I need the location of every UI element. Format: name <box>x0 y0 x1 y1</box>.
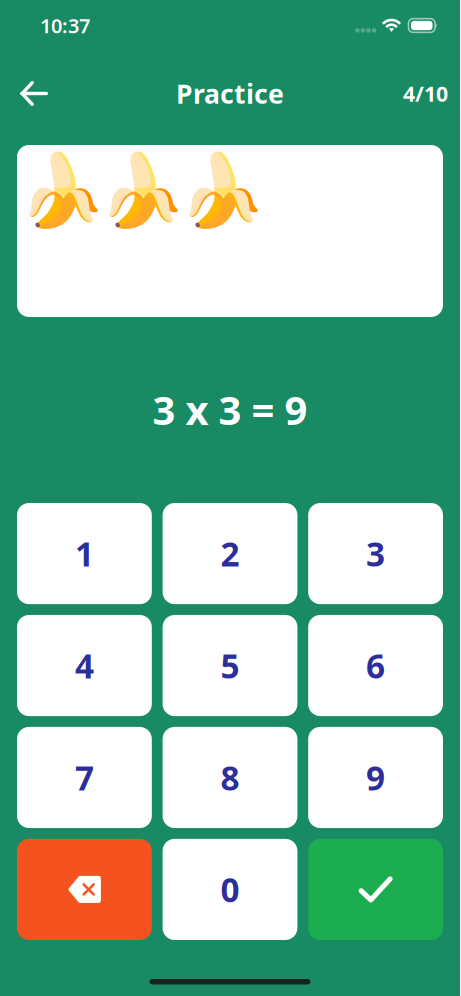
staticText: 9 <box>366 755 385 800</box>
button[interactable]: 1 <box>17 503 152 604</box>
staticText: 🍌 <box>18 151 106 231</box>
button[interactable]: 6 <box>308 615 443 716</box>
staticText: 1 <box>75 531 94 576</box>
button[interactable]: 4 <box>17 615 152 716</box>
button[interactable]: 5 <box>163 615 297 716</box>
staticText: 3 x 3 = 9 <box>152 383 307 436</box>
staticText: Practice <box>176 76 284 111</box>
staticText: 6 <box>366 643 385 688</box>
staticText: 4 <box>75 643 94 688</box>
staticText: 🍌 <box>98 151 186 231</box>
button[interactable]: 3 <box>308 503 443 604</box>
staticText: 4/10 <box>403 79 448 108</box>
button[interactable]: Submit answer <box>308 839 443 940</box>
button[interactable]: 8 <box>163 727 297 828</box>
button[interactable]: 9 <box>308 727 443 828</box>
staticText: 3 <box>366 531 385 576</box>
staticText: 2 <box>220 531 239 576</box>
button[interactable]: 7 <box>17 727 152 828</box>
button[interactable]: 0 <box>163 839 297 940</box>
staticText: 10:37 <box>40 12 90 39</box>
staticText: 7 <box>75 755 94 800</box>
staticText: 8 <box>220 755 239 800</box>
staticText: 0 <box>220 867 239 912</box>
button[interactable]: 2 <box>163 503 297 604</box>
staticText: 5 <box>220 643 239 688</box>
button[interactable]: Delete <box>17 839 152 940</box>
button[interactable]: Back <box>13 71 55 116</box>
staticText: 🍌 <box>178 151 266 231</box>
